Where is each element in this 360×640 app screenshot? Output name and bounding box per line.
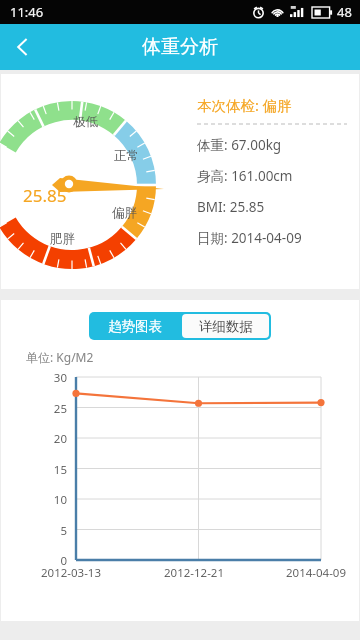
staticText: 48 bbox=[337, 3, 352, 21]
staticText: 详细数据 bbox=[199, 318, 253, 335]
staticText: 5 bbox=[45, 523, 67, 539]
staticText: 体重: 67.00kg bbox=[197, 136, 282, 154]
staticText: 体重分析 bbox=[142, 35, 218, 59]
button[interactable]: 趋势图表 bbox=[89, 312, 180, 340]
staticText: 趋势图表 bbox=[108, 318, 162, 335]
staticText: 2012-03-13 bbox=[41, 565, 102, 581]
button[interactable]: 详细数据 bbox=[182, 314, 269, 338]
staticText: 本次体检: 偏胖 bbox=[197, 95, 292, 115]
staticText: 0 bbox=[45, 553, 67, 569]
staticText: 极低 bbox=[73, 114, 98, 130]
staticText: BMI: 25.85 bbox=[197, 198, 265, 216]
staticText: 15 bbox=[45, 462, 67, 478]
staticText: 11:46 bbox=[10, 3, 44, 21]
staticText: 25.85 bbox=[23, 184, 67, 207]
staticText: 25 bbox=[45, 401, 67, 417]
staticText: 单位: Kg/M2 bbox=[26, 349, 94, 365]
staticText: 偏胖 bbox=[112, 205, 137, 221]
staticText: 10 bbox=[45, 492, 67, 508]
staticText: 2014-04-09 bbox=[286, 565, 347, 581]
staticText: 肥胖 bbox=[50, 231, 75, 247]
staticText: 30 bbox=[45, 370, 67, 386]
button[interactable]: Back bbox=[0, 24, 46, 70]
staticText: 身高: 161.00cm bbox=[197, 167, 293, 185]
staticText: 正常 bbox=[114, 148, 139, 164]
staticText: 2012-12-21 bbox=[164, 565, 225, 581]
staticText: 日期: 2014-04-09 bbox=[197, 229, 302, 247]
staticText: 20 bbox=[45, 431, 67, 447]
